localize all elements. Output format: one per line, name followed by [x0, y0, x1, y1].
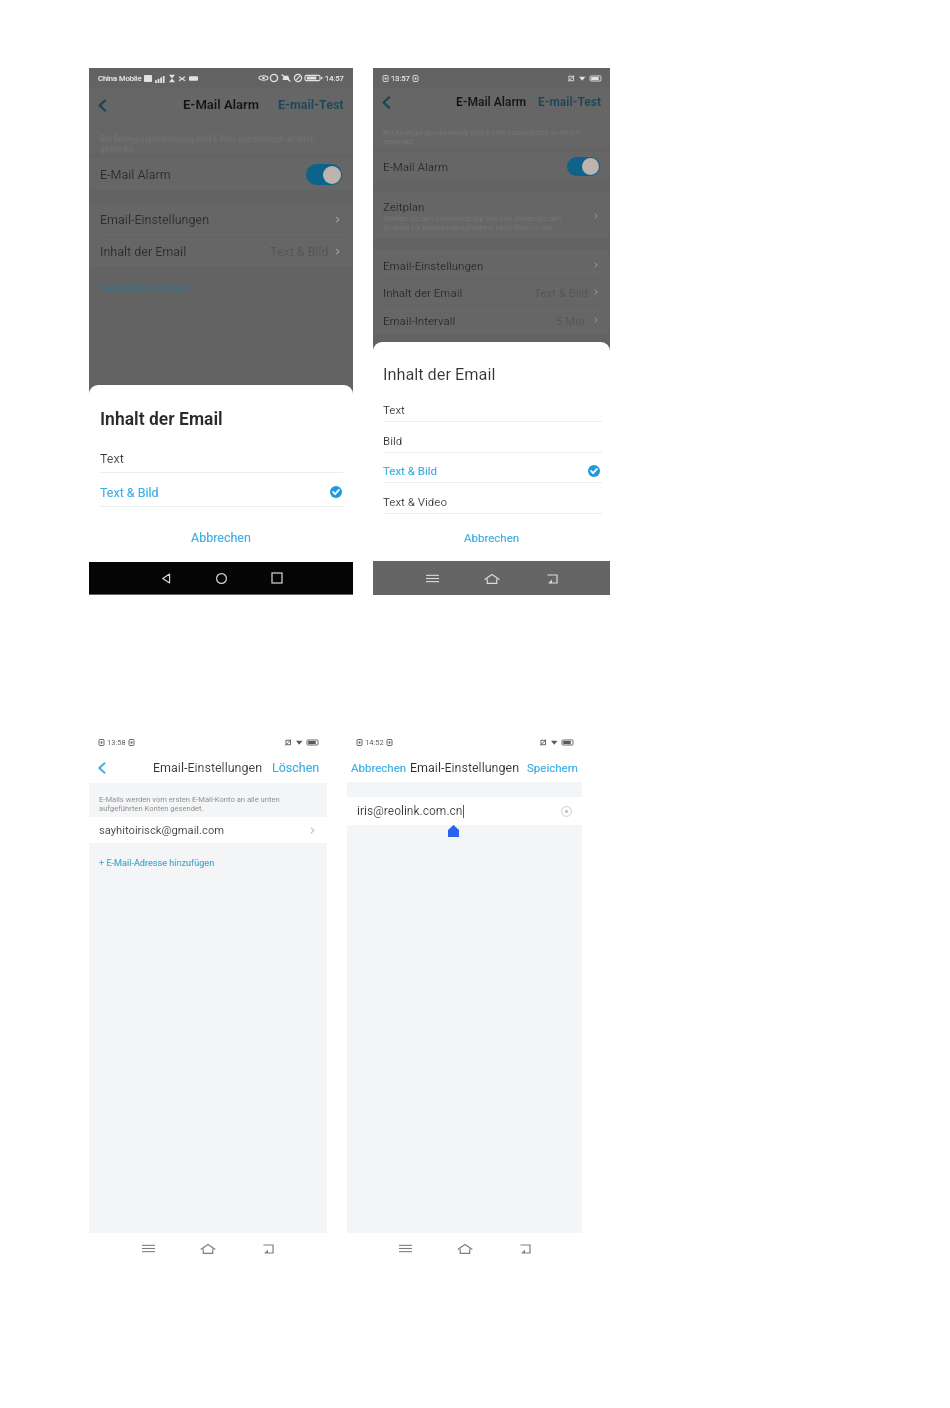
staticText: E-mail-Test — [278, 97, 344, 112]
staticText: China Mobile — [98, 74, 142, 83]
staticText: 14:52 — [365, 738, 384, 747]
button[interactable]: Menu — [402, 563, 462, 594]
button[interactable]: Inhalt der Email — [373, 279, 610, 305]
staticText: + E-Mail-Adresse hinzufügen — [99, 858, 215, 869]
staticText: Email-Einstellungen — [100, 212, 210, 227]
staticText: 13:58 — [107, 738, 126, 747]
staticText: Text & Video — [383, 495, 447, 508]
button[interactable]: Email-Einstellungen — [373, 252, 610, 278]
button[interactable]: Text & Video — [373, 489, 610, 514]
button[interactable]: E-Mail Alarm — [89, 160, 353, 188]
staticText: Text & Bild — [534, 286, 588, 299]
staticText: sayhitoirisck@gmail.com — [99, 824, 225, 837]
button[interactable]: Text — [89, 443, 353, 473]
button[interactable]: Speichern — [527, 761, 582, 774]
button[interactable]: Back — [139, 562, 194, 594]
staticText: E-Mail Alarm — [456, 95, 527, 109]
staticText: Inhalt der Email — [383, 365, 496, 384]
button[interactable]: Menu — [375, 1233, 435, 1264]
button[interactable]: E-Mail Alarm toggle — [567, 157, 600, 176]
staticText: Bei Bewegungserkennung wird E-Mail autom… — [383, 128, 580, 146]
staticText: Inhalt der Email — [383, 286, 463, 299]
staticText: Zeitplan — [383, 200, 425, 213]
staticText: Abbrechen — [464, 531, 520, 544]
staticText: Bei Bewegungserkennung wird E-Mail autom… — [100, 134, 316, 154]
button[interactable]: Home — [194, 562, 249, 594]
staticText: 14:57 — [325, 74, 344, 83]
staticText: Abbrechen — [191, 530, 251, 545]
staticText: Text & Bild — [383, 464, 437, 477]
button[interactable]: E-mail-Test — [538, 95, 610, 109]
staticText: Inhalt der Email — [100, 409, 223, 430]
button[interactable]: Back — [93, 759, 111, 777]
button[interactable]: Email-Einstellungen — [89, 206, 353, 233]
button[interactable]: sayhitoirisck@gmail.com — [89, 817, 327, 843]
staticText: iris@reolink.com.cn — [357, 804, 463, 818]
staticText: E-Mail Alarm — [100, 167, 171, 182]
staticText: Email-Einstellungen — [383, 259, 484, 272]
button[interactable]: Abbrechen — [347, 761, 407, 774]
staticText: 5 Min. — [556, 314, 588, 327]
button[interactable]: Clear text — [560, 805, 572, 817]
staticText: E-Mail Alarm — [383, 160, 448, 173]
staticText: Email-Intervall — [383, 314, 456, 327]
button[interactable]: Home — [435, 1233, 495, 1264]
button[interactable]: Löschen — [272, 760, 327, 775]
button[interactable]: E-Mail Alarm — [373, 153, 610, 179]
staticText: Wählen Sie den Erkennungstyp aus und ste… — [383, 214, 562, 232]
staticText: Löschen — [272, 760, 320, 775]
button[interactable]: Home — [178, 1233, 238, 1264]
staticText: E-Mail Alarm — [183, 97, 260, 112]
staticText: E-Mails werden vom ersten E-Mail-Konto a… — [99, 795, 280, 813]
button[interactable]: Back — [495, 1233, 555, 1264]
button[interactable]: Bild — [373, 427, 610, 453]
staticText: Email-Einstellungen — [153, 760, 263, 775]
staticText: Text — [100, 451, 124, 466]
button[interactable]: Back — [522, 563, 582, 594]
staticText: 13:57 — [391, 74, 410, 83]
button[interactable]: Text & Bild — [89, 477, 353, 507]
staticText: Email-Einstellungen — [410, 760, 520, 775]
staticText: Inhalt der Email — [100, 244, 187, 259]
button[interactable]: Text & Bild — [373, 458, 610, 483]
button[interactable]: Text — [373, 396, 610, 422]
button[interactable]: Abbrechen — [373, 522, 610, 552]
button[interactable]: Inhalt der Email — [89, 238, 353, 265]
button[interactable]: E-mail-Test — [278, 97, 353, 112]
staticText: Bild — [383, 434, 403, 447]
button[interactable]: Recents — [249, 562, 304, 594]
staticText: Text — [383, 403, 405, 416]
button[interactable]: Back — [377, 93, 395, 111]
button[interactable]: + E-Mail-Adresse hinzufügen — [89, 853, 327, 874]
staticText: Abbrechen — [351, 761, 407, 774]
button[interactable]: Home — [462, 563, 522, 594]
button[interactable]: Keine Email erhalten? — [100, 282, 191, 293]
button[interactable]: Back — [93, 96, 111, 114]
button[interactable]: Email-Intervall — [373, 307, 610, 333]
staticText: Text & Bild — [270, 244, 329, 259]
button[interactable]: Zeitplan — [373, 198, 610, 234]
staticText: Text & Bild — [100, 485, 159, 500]
staticText: E-mail-Test — [538, 95, 601, 109]
staticText: Speichern — [527, 761, 578, 774]
button[interactable]: Menu — [118, 1233, 178, 1264]
button[interactable]: Abbrechen — [89, 520, 353, 554]
button[interactable]: Back — [238, 1233, 298, 1264]
staticText: Keine Email erhalten? — [100, 282, 191, 293]
button[interactable]: E-Mail Alarm toggle — [306, 164, 342, 185]
